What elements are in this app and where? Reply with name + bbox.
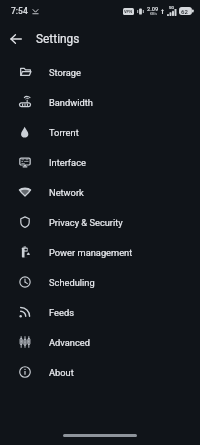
button[interactable]: Storage [0, 57, 200, 87]
button[interactable]: Torrent [0, 117, 200, 147]
staticText: 7:54 [11, 6, 28, 16]
staticText: Bandwidth [49, 97, 93, 108]
staticText: About [49, 367, 74, 378]
button[interactable]: Network [0, 177, 200, 207]
staticText: 5G [169, 5, 175, 10]
staticText: VPN [124, 9, 133, 14]
staticText: Storage [49, 67, 81, 78]
staticText: Torrent [49, 127, 79, 138]
button[interactable]: Interface [0, 147, 200, 177]
staticText: Interface [49, 157, 86, 168]
staticText: Advanced [49, 337, 90, 348]
staticText: 2.09 [147, 6, 159, 13]
button[interactable]: Advanced [0, 327, 200, 357]
staticText: KB/s [150, 12, 157, 16]
button[interactable]: Power management [0, 237, 200, 267]
staticText: Privacy & Security [49, 217, 123, 228]
staticText: Scheduling [49, 277, 95, 288]
button[interactable]: Back [0, 23, 32, 55]
button[interactable]: Bandwidth [0, 87, 200, 117]
staticText: Network [49, 187, 84, 198]
button[interactable]: Scheduling [0, 267, 200, 297]
button[interactable]: Privacy & Security [0, 207, 200, 237]
button[interactable]: Feeds [0, 297, 200, 327]
staticText: Power management [49, 247, 133, 258]
staticText: 62 [181, 8, 188, 15]
button[interactable]: About [0, 357, 200, 387]
staticText: Feeds [49, 307, 74, 318]
staticText: Settings [36, 32, 80, 46]
